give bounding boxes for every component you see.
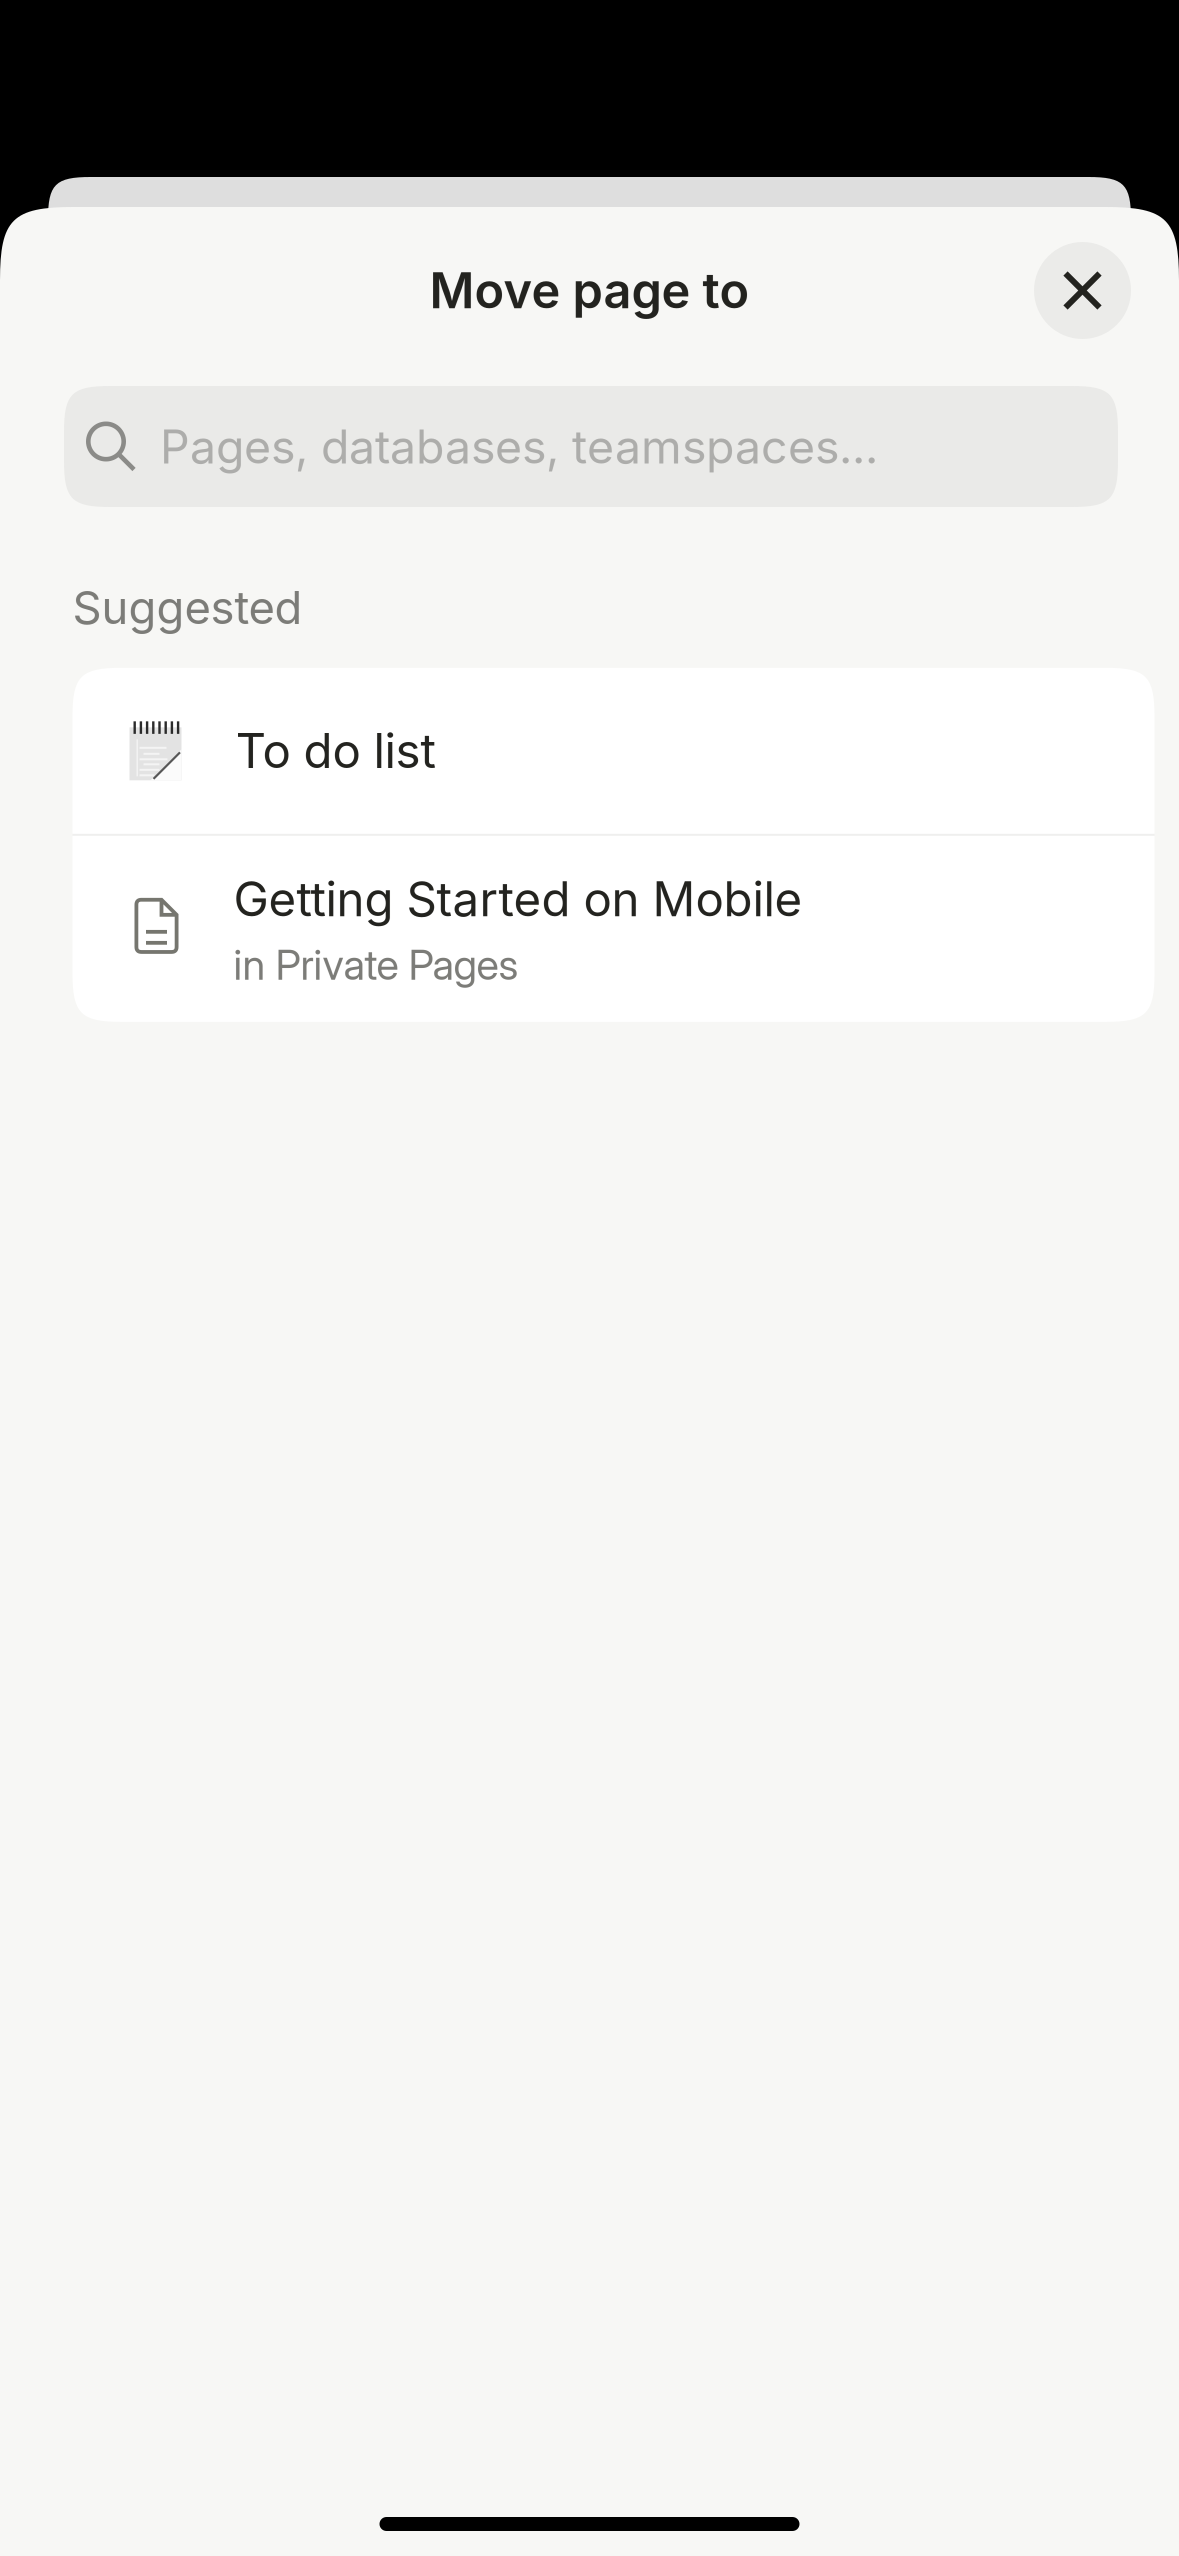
button[interactable]: Getting Started on Mobile [72, 836, 1154, 1022]
button[interactable]: Pages, databases, teamspaces... [64, 386, 1118, 507]
staticText: in Private Pages [233, 940, 518, 990]
staticText: Getting Started on Mobile [233, 870, 802, 928]
staticText: Pages, databases, teamspaces... [160, 418, 878, 474]
staticText: Move page to [429, 261, 749, 320]
staticText: Suggested [72, 580, 302, 635]
button[interactable]: Close [1034, 242, 1131, 339]
button[interactable]: To do list [72, 668, 1154, 834]
staticText: To do list [235, 722, 435, 779]
